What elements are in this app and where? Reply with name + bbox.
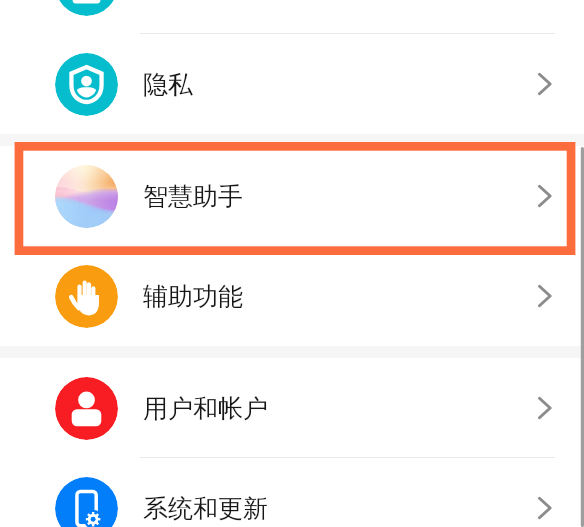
button[interactable]: 系统和更新 [0, 458, 584, 527]
staticText: 系统和更新 [143, 493, 268, 524]
other: 打开 [530, 69, 560, 99]
button[interactable]: 辅助功能 [0, 246, 584, 346]
other: 打开 [530, 393, 560, 423]
staticText: 用户和帐户 [143, 393, 268, 424]
button[interactable]: 智慧助手 [0, 146, 584, 246]
button[interactable]: 用户和帐户 [0, 358, 584, 458]
other: 打开 [530, 281, 560, 311]
staticText: 隐私 [143, 69, 193, 100]
other: 打开 [530, 493, 560, 523]
button[interactable]: 隐私 [0, 34, 584, 134]
other: 打开 [530, 181, 560, 211]
button[interactable]: 安全 [0, 0, 584, 34]
staticText: 智慧助手 [143, 181, 243, 212]
staticText: 辅助功能 [143, 281, 243, 312]
